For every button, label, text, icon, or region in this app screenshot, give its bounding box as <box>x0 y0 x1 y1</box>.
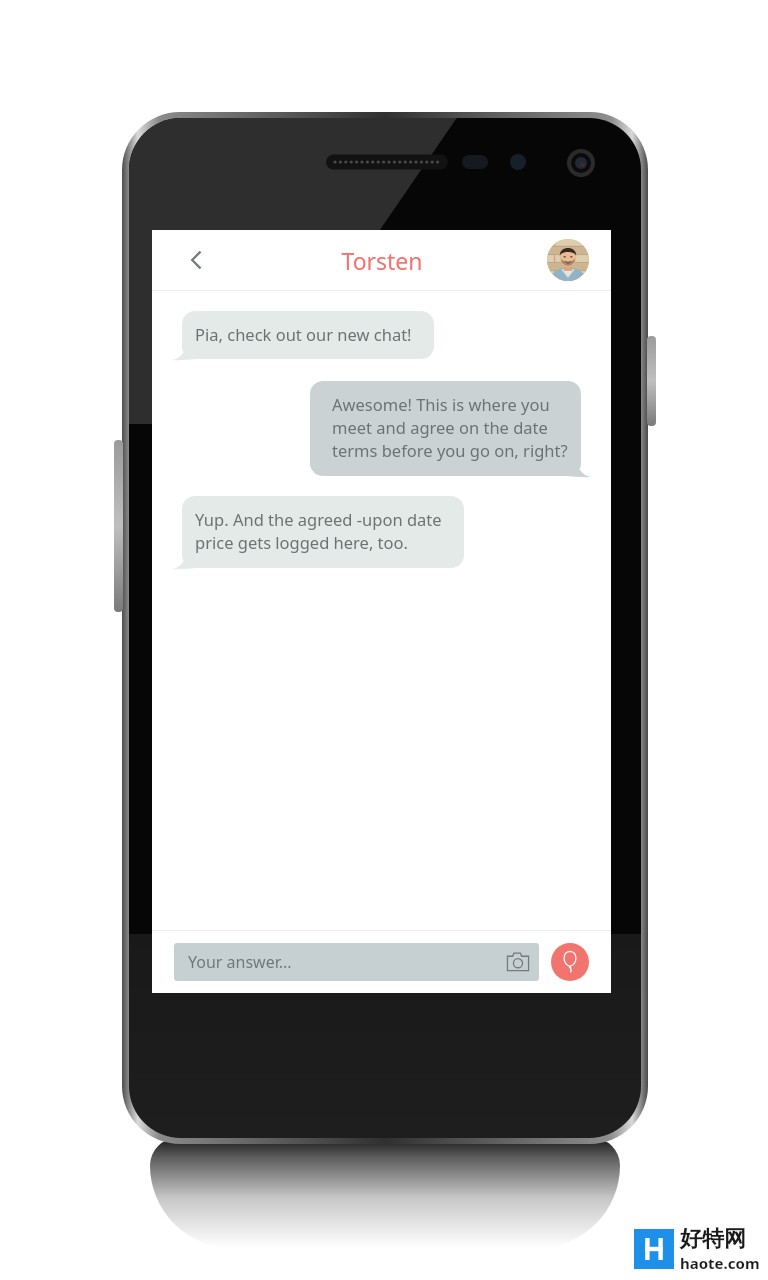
button[interactable]: Send date offer <box>551 943 589 981</box>
button[interactable]: Pia, check out our new chat! <box>169 311 434 359</box>
staticText: Awesome! This is where you meet and agre… <box>332 393 568 462</box>
staticText: Pia, check out our new chat! <box>195 323 412 345</box>
button[interactable]: Attach photo <box>505 949 531 975</box>
button[interactable]: Your answer... <box>174 943 539 981</box>
button[interactable]: Profile photo <box>547 239 589 281</box>
button[interactable]: Yup. And the agreed -upon date price get… <box>169 496 464 568</box>
button[interactable]: Back <box>180 243 214 277</box>
staticText: Yup. And the agreed -upon date price get… <box>195 508 442 554</box>
button[interactable]: Awesome! This is where you meet and agre… <box>310 381 594 476</box>
staticText: Your answer... <box>188 951 505 973</box>
staticText: Torsten <box>341 245 423 276</box>
staticText: 好特网 <box>680 1225 746 1253</box>
staticText: haote.com <box>680 1253 760 1273</box>
